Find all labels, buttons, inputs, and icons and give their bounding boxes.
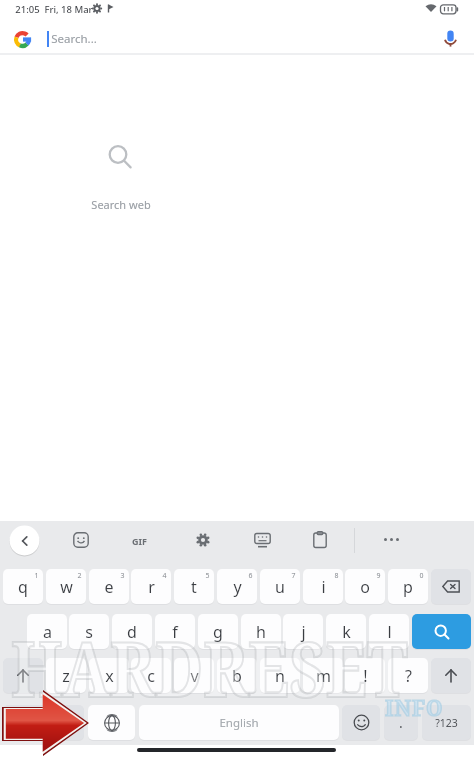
staticText: e — [104, 576, 114, 598]
button[interactable] — [73, 532, 89, 548]
button[interactable]: o — [345, 569, 385, 604]
button[interactable]: q — [3, 569, 43, 604]
staticText: i — [321, 576, 326, 598]
button[interactable]: ! — [345, 658, 385, 693]
button[interactable] — [431, 569, 471, 604]
staticText: n — [275, 665, 285, 687]
button[interactable]: n — [260, 658, 300, 693]
button[interactable]: k — [326, 614, 366, 649]
button[interactable] — [195, 532, 211, 548]
button[interactable]: x — [89, 658, 129, 693]
staticText: z — [62, 665, 70, 687]
staticText: x — [105, 665, 114, 687]
button[interactable]: j — [283, 614, 323, 649]
button[interactable]: l — [369, 614, 409, 649]
button[interactable]: m — [303, 658, 343, 693]
staticText: 9 — [376, 571, 381, 581]
staticText: 2 — [77, 571, 82, 581]
button[interactable]: t — [174, 569, 214, 604]
staticText: HARDRESET — [11, 617, 408, 717]
button[interactable] — [254, 532, 271, 549]
staticText: j — [301, 621, 306, 643]
staticText: k — [342, 621, 351, 643]
button[interactable]: g — [198, 614, 238, 649]
staticText: 4 — [162, 571, 167, 581]
staticText: Fri, 18 Mar — [44, 3, 93, 16]
staticText: t — [191, 576, 197, 598]
button[interactable]: u — [260, 569, 300, 604]
staticText: INFO — [385, 694, 444, 722]
staticText: s — [85, 621, 93, 643]
staticText: b — [232, 665, 242, 687]
staticText: English — [219, 715, 259, 731]
staticText: p — [403, 576, 413, 598]
staticText: INFO — [385, 694, 444, 722]
staticText: 5 — [205, 571, 210, 581]
button[interactable]: English — [139, 705, 339, 740]
staticText: y — [233, 576, 242, 598]
staticText: 6 — [248, 571, 253, 581]
staticText: 0 — [419, 571, 424, 581]
button[interactable]: . — [384, 705, 418, 740]
staticText: 3 — [120, 571, 125, 581]
staticText: o — [360, 576, 370, 598]
staticText: 7 — [291, 571, 296, 581]
button[interactable]: a — [27, 614, 67, 649]
staticText: v — [190, 665, 199, 687]
button[interactable]: ? — [388, 658, 428, 693]
button[interactable] — [3, 658, 43, 693]
button[interactable]: z — [46, 658, 86, 693]
button[interactable]: ?123 — [422, 705, 471, 740]
button[interactable]: h — [241, 614, 281, 649]
button[interactable]: b — [217, 658, 257, 693]
button[interactable] — [88, 705, 135, 740]
button[interactable]: f — [155, 614, 195, 649]
button[interactable]: r — [131, 569, 171, 604]
button[interactable]: p — [388, 569, 428, 604]
staticText: ?123 — [435, 716, 458, 730]
button[interactable]: w — [46, 569, 86, 604]
button[interactable]: i — [303, 569, 343, 604]
button[interactable] — [383, 537, 400, 542]
button[interactable]: e — [89, 569, 129, 604]
staticText: ! — [363, 665, 368, 687]
staticText: . — [399, 713, 403, 732]
button[interactable] — [313, 531, 327, 549]
staticText: f — [172, 621, 178, 643]
staticText: 1 — [34, 571, 39, 581]
staticText: m — [316, 665, 331, 687]
staticText: r — [148, 576, 155, 598]
staticText: l — [387, 621, 392, 643]
staticText: h — [256, 621, 266, 643]
button[interactable]: Search... — [0, 22, 474, 53]
staticText: c — [147, 665, 155, 687]
staticText: g — [213, 621, 223, 643]
staticText: Search web — [51, 197, 191, 212]
staticText: q — [18, 576, 28, 598]
button[interactable]: y — [217, 569, 257, 604]
button[interactable] — [20, 536, 30, 546]
button[interactable] — [342, 705, 380, 740]
button[interactable]: d — [112, 614, 152, 649]
staticText: ?123 — [32, 716, 55, 730]
staticText: 8 — [334, 571, 339, 581]
staticText: w — [60, 576, 73, 598]
staticText: HARDRESET — [11, 617, 408, 717]
staticText: Search... — [51, 31, 97, 47]
staticText: a — [43, 621, 52, 643]
staticText: u — [275, 576, 285, 598]
button[interactable]: c — [131, 658, 171, 693]
staticText: ? — [405, 665, 412, 687]
button[interactable] — [431, 658, 471, 693]
button[interactable]: v — [174, 658, 214, 693]
button[interactable]: ?123 — [3, 705, 84, 740]
staticText: 21:05 — [15, 3, 40, 16]
staticText: GIF — [132, 535, 147, 547]
staticText: d — [127, 621, 137, 643]
button[interactable]: s — [69, 614, 109, 649]
button[interactable] — [412, 614, 471, 649]
